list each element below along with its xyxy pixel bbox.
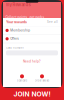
button[interactable]: Order ahead <box>32 74 52 82</box>
staticText: Membership <box>10 29 30 32</box>
button[interactable]: Scan card <box>12 74 32 82</box>
staticText: Collect points, get perks <box>5 15 44 19</box>
staticText: Your rewards <box>6 20 27 24</box>
staticText: myRewards <box>5 2 30 7</box>
staticText: Need help? <box>23 59 41 63</box>
button[interactable]: Membership <box>3 26 61 34</box>
button[interactable]: Offers <box>3 35 61 43</box>
staticText: Offers <box>10 37 19 40</box>
staticText: JOIN NOW! <box>13 90 50 98</box>
button[interactable]: JOIN NOW! <box>0 88 64 100</box>
staticText: See all <box>47 20 58 24</box>
staticText: Order ahead <box>34 79 49 82</box>
staticText: Scan card <box>16 79 27 82</box>
staticText: Card number <box>6 46 24 49</box>
